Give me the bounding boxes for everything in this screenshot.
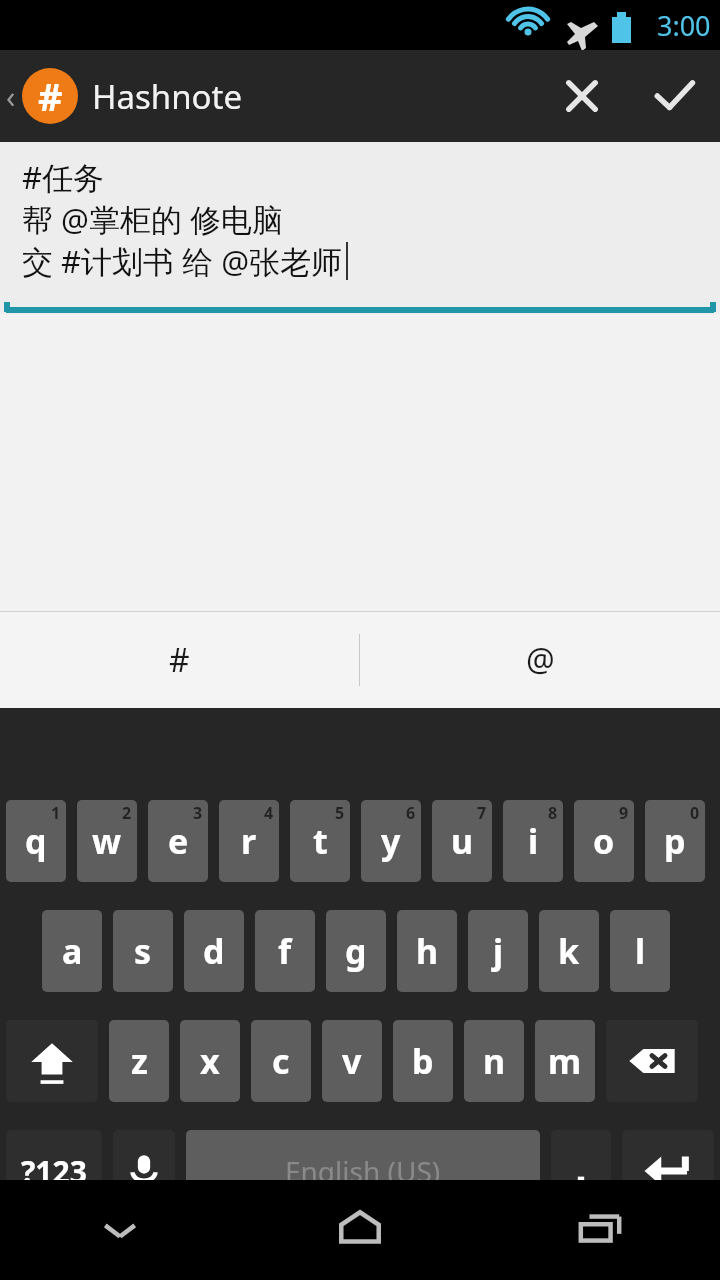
staticText: q (25, 818, 47, 864)
staticText: z (131, 1038, 148, 1084)
staticText: b (412, 1038, 434, 1084)
staticText: 3 (193, 802, 203, 824)
button[interactable]: Recent apps (480, 1180, 720, 1280)
button[interactable]: n (464, 1020, 524, 1102)
button[interactable]: d (184, 910, 244, 992)
staticText: g (345, 928, 367, 974)
button[interactable]: h (397, 910, 457, 992)
staticText: 9 (619, 802, 629, 824)
button[interactable]: u (432, 800, 492, 882)
button[interactable]: ‹ (0, 50, 251, 142)
button[interactable]: k (539, 910, 599, 992)
staticText: i (528, 818, 539, 864)
staticText: ?123 (21, 1151, 87, 1192)
button[interactable]: Enter (622, 1130, 714, 1212)
staticText: 3:00 (657, 7, 711, 44)
button[interactable]: r (219, 800, 279, 882)
staticText: a (62, 928, 83, 974)
button[interactable]: j (468, 910, 528, 992)
staticText: ‹ (6, 76, 16, 117)
staticText: d (203, 928, 225, 974)
button[interactable]: Shift (6, 1020, 98, 1102)
staticText: r (241, 818, 257, 864)
button[interactable]: Backspace (606, 1020, 698, 1102)
button[interactable]: a (42, 910, 102, 992)
button[interactable]: Home (240, 1180, 480, 1280)
button[interactable]: English (US) (186, 1130, 540, 1212)
staticText: #任务 (22, 156, 105, 198)
button[interactable]: q (6, 800, 66, 882)
staticText: @ (526, 638, 555, 682)
button[interactable]: g (326, 910, 386, 992)
staticText: o (593, 818, 615, 864)
staticText: e (168, 818, 189, 864)
button[interactable]: y (361, 800, 421, 882)
staticText: 交 #计划书 给 @张老师 (22, 240, 343, 282)
staticText: 6 (406, 802, 416, 824)
staticText: x (200, 1038, 220, 1084)
button[interactable]: i (503, 800, 563, 882)
button[interactable]: s (113, 910, 173, 992)
button[interactable]: z (109, 1020, 169, 1102)
staticText: 2 (122, 802, 132, 824)
staticText: # (169, 638, 190, 682)
staticText: 帮 @掌柜的 修电脑 (22, 198, 283, 240)
button[interactable]: v (322, 1020, 382, 1102)
staticText: English (US) (285, 1152, 441, 1190)
button[interactable]: Period (551, 1130, 611, 1212)
staticText: k (558, 928, 580, 974)
staticText: w (92, 818, 122, 864)
staticText: p (664, 818, 686, 864)
button[interactable]: o (574, 800, 634, 882)
staticText: s (134, 928, 152, 974)
button[interactable]: ?123 (6, 1130, 102, 1212)
staticText: 4 (264, 802, 274, 824)
button[interactable]: t (290, 800, 350, 882)
staticText: t (313, 818, 328, 864)
button[interactable]: w (77, 800, 137, 882)
button[interactable]: # (0, 612, 359, 708)
button[interactable]: p (645, 800, 705, 882)
button[interactable]: Hide keyboard (0, 1180, 240, 1280)
staticText: Hashnote (92, 74, 243, 119)
staticText: l (635, 928, 646, 974)
button[interactable]: l (610, 910, 670, 992)
button[interactable]: c (251, 1020, 311, 1102)
staticText: m (548, 1038, 582, 1084)
button[interactable]: e (148, 800, 208, 882)
button[interactable]: Discard (536, 50, 628, 142)
button[interactable]: f (255, 910, 315, 992)
staticText: h (416, 928, 439, 974)
button[interactable]: @ (360, 612, 720, 708)
button[interactable]: Save (628, 50, 720, 142)
staticText: y (381, 818, 401, 864)
staticText: u (451, 818, 474, 864)
staticText: n (483, 1038, 506, 1084)
button[interactable]: x (180, 1020, 240, 1102)
button[interactable]: m (535, 1020, 595, 1102)
staticText: v (342, 1038, 362, 1084)
button[interactable]: Voice input (113, 1130, 175, 1212)
button[interactable]: b (393, 1020, 453, 1102)
staticText: 8 (548, 802, 558, 824)
staticText: j (493, 928, 504, 974)
staticText: 7 (477, 802, 487, 824)
staticText: f (278, 928, 292, 974)
staticText: c (272, 1038, 290, 1084)
staticText: 0 (690, 802, 700, 824)
staticText: 1 (51, 802, 61, 824)
staticText: 5 (335, 802, 345, 824)
staticText: # (38, 70, 63, 122)
